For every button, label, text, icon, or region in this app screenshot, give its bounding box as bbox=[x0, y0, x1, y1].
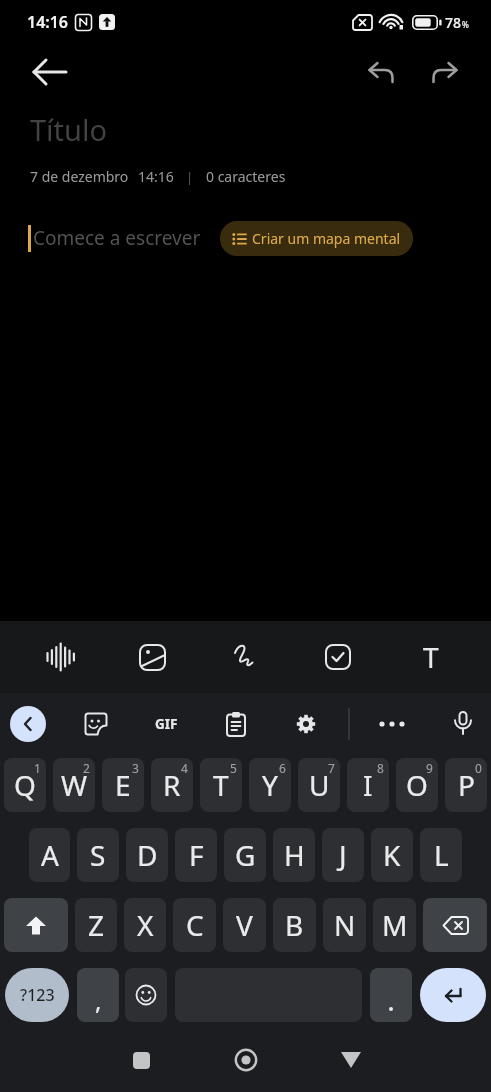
button[interactable]: K bbox=[371, 828, 413, 882]
button[interactable] bbox=[441, 702, 485, 746]
button[interactable]: C bbox=[173, 898, 216, 952]
staticText: K bbox=[383, 836, 401, 874]
staticText: C bbox=[186, 906, 204, 944]
button[interactable]: Y bbox=[249, 758, 291, 812]
button[interactable] bbox=[106, 621, 198, 693]
button[interactable]: F bbox=[175, 828, 217, 882]
staticText: 3 bbox=[132, 760, 139, 776]
button[interactable] bbox=[28, 50, 72, 94]
staticText: 8 bbox=[377, 760, 384, 776]
staticText: | bbox=[186, 168, 194, 186]
staticText: 0 bbox=[475, 760, 482, 776]
button[interactable]: E bbox=[102, 758, 144, 812]
staticText: Q bbox=[14, 766, 36, 804]
button[interactable] bbox=[125, 968, 167, 1022]
button[interactable] bbox=[423, 898, 487, 952]
staticText: Z bbox=[88, 906, 105, 944]
button[interactable] bbox=[430, 58, 459, 87]
staticText: Criar um mapa mental bbox=[252, 229, 401, 248]
button[interactable] bbox=[370, 968, 412, 1022]
button[interactable] bbox=[366, 58, 395, 87]
staticText: , bbox=[95, 984, 102, 1017]
staticText: 7 bbox=[328, 760, 335, 776]
staticText: H bbox=[284, 836, 305, 874]
button[interactable]: , bbox=[77, 968, 119, 1022]
staticText: J bbox=[339, 836, 347, 874]
button[interactable]: V bbox=[223, 898, 266, 952]
button[interactable]: GIF bbox=[144, 702, 188, 746]
staticText: T bbox=[213, 766, 229, 804]
button[interactable] bbox=[121, 1040, 161, 1080]
staticText: U bbox=[309, 766, 330, 804]
button[interactable]: N bbox=[323, 898, 366, 952]
staticText: % bbox=[462, 19, 469, 30]
button[interactable]: W bbox=[53, 758, 95, 812]
staticText: E bbox=[115, 766, 131, 804]
staticText: 14:16 bbox=[27, 11, 69, 33]
staticText: GIF bbox=[155, 715, 178, 733]
button[interactable]: P bbox=[445, 758, 487, 812]
button[interactable]: Q bbox=[4, 758, 46, 812]
button[interactable] bbox=[420, 968, 486, 1022]
button[interactable]: H bbox=[273, 828, 315, 882]
staticText: 0 caracteres bbox=[206, 167, 286, 186]
staticText: 4 bbox=[181, 760, 188, 776]
button[interactable]: S bbox=[77, 828, 119, 882]
staticText: Título bbox=[30, 110, 108, 149]
staticText: N bbox=[334, 906, 356, 944]
button[interactable]: O bbox=[396, 758, 438, 812]
staticText: 78 bbox=[445, 13, 462, 32]
staticText: M bbox=[382, 906, 408, 944]
button[interactable] bbox=[284, 702, 328, 746]
button[interactable]: T bbox=[200, 758, 242, 812]
staticText: 6 bbox=[279, 760, 286, 776]
button[interactable] bbox=[226, 1040, 266, 1080]
button[interactable] bbox=[4, 898, 68, 952]
staticText: T bbox=[423, 638, 439, 676]
staticText: L bbox=[434, 836, 449, 874]
button[interactable]: I bbox=[347, 758, 389, 812]
button[interactable] bbox=[74, 702, 118, 746]
button[interactable]: G bbox=[224, 828, 266, 882]
button[interactable]: R bbox=[151, 758, 193, 812]
button[interactable]: ?123 bbox=[5, 968, 69, 1022]
button[interactable] bbox=[370, 702, 414, 746]
staticText: X bbox=[137, 906, 154, 944]
staticText: 9 bbox=[426, 760, 433, 776]
staticText: D bbox=[137, 836, 158, 874]
staticText: F bbox=[189, 836, 204, 874]
staticText: V bbox=[236, 906, 253, 944]
staticText: O bbox=[406, 766, 428, 804]
button[interactable]: X bbox=[124, 898, 166, 952]
button[interactable] bbox=[291, 621, 384, 693]
staticText: 7 de dezembro bbox=[30, 167, 129, 186]
staticText: 14:16 bbox=[138, 167, 174, 186]
button[interactable] bbox=[198, 621, 291, 693]
button[interactable]: L bbox=[420, 828, 462, 882]
button[interactable]: J bbox=[322, 828, 364, 882]
staticText: G bbox=[235, 836, 256, 874]
button[interactable]: A bbox=[29, 828, 70, 882]
staticText: Y bbox=[262, 766, 278, 804]
staticText: B bbox=[285, 906, 304, 944]
button[interactable]: B bbox=[273, 898, 316, 952]
staticText: W bbox=[61, 766, 88, 804]
button[interactable] bbox=[14, 621, 106, 693]
staticText: I bbox=[363, 766, 373, 804]
staticText: 2 bbox=[83, 760, 90, 776]
staticText: 1 bbox=[34, 760, 41, 776]
button[interactable]: U bbox=[298, 758, 340, 812]
button[interactable]: M bbox=[373, 898, 416, 952]
button[interactable]: Z bbox=[75, 898, 117, 952]
button[interactable]: D bbox=[126, 828, 168, 882]
button[interactable] bbox=[10, 706, 46, 742]
staticText: 5 bbox=[230, 760, 237, 776]
staticText: P bbox=[458, 766, 475, 804]
button[interactable] bbox=[331, 1040, 371, 1080]
button[interactable]: Criar um mapa mental bbox=[220, 221, 413, 256]
button[interactable] bbox=[214, 702, 258, 746]
button[interactable]: T bbox=[384, 621, 477, 693]
staticText: ?123 bbox=[20, 984, 55, 1006]
staticText: R bbox=[163, 766, 181, 804]
